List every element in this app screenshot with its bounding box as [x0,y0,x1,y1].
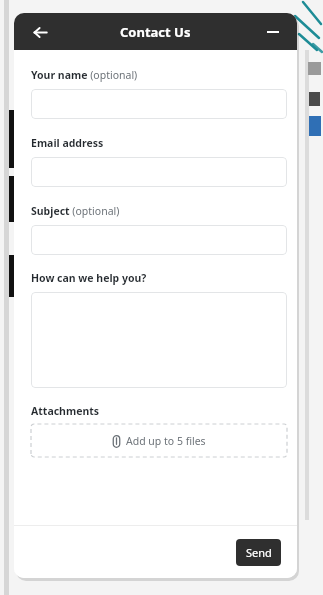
staticText: Your name (optional) [31,68,138,82]
button[interactable]: Minimize [260,19,286,45]
button[interactable]: Send [236,539,281,566]
staticText: Send [246,545,272,560]
staticText: Add up to 5 files [126,434,206,448]
button[interactable]: Add up to 5 files [31,424,287,457]
staticText: Subject (optional) [31,204,120,218]
staticText: Email address [31,136,104,150]
button[interactable]: Text field [31,157,287,187]
staticText: Contact Us [120,23,191,41]
staticText: Attachments [31,404,100,418]
button[interactable]: Back [26,18,54,46]
staticText: How can we help you? [31,271,147,285]
button[interactable]: Text field [31,89,287,119]
button[interactable]: Text field [31,225,287,255]
button[interactable]: Text field [31,292,287,388]
